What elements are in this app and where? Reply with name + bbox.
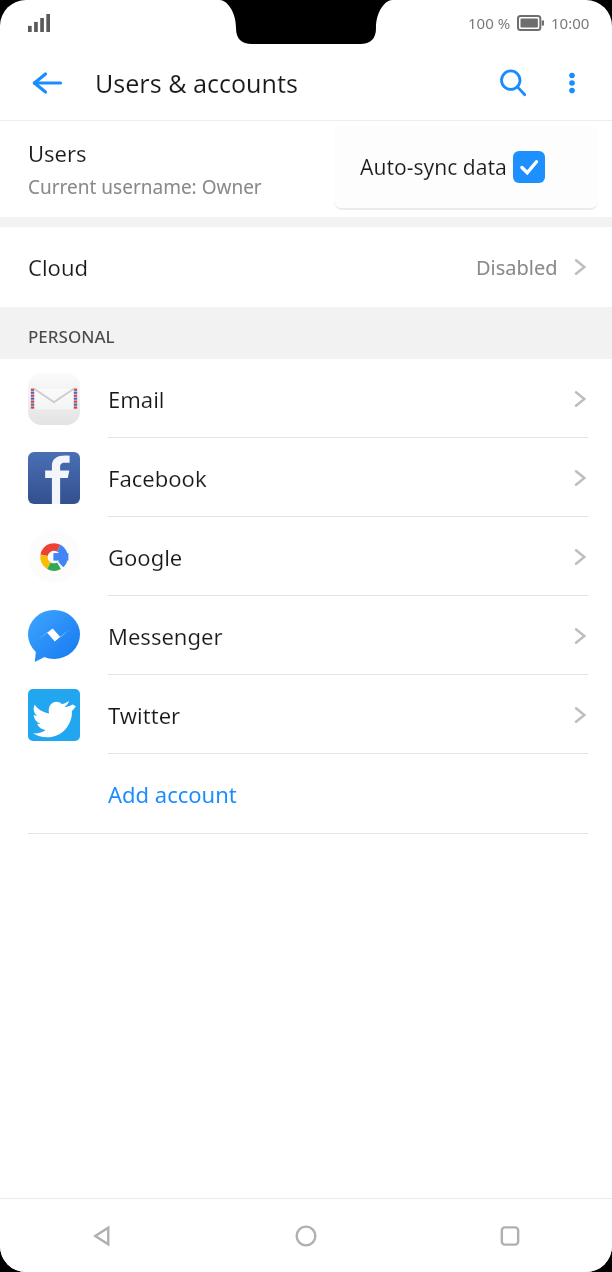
staticText: Cloud <box>28 252 89 282</box>
staticText: Add account <box>108 779 237 809</box>
button[interactable]: Email <box>0 359 612 438</box>
button[interactable]: Google <box>0 517 612 596</box>
staticText: Auto-sync data <box>360 153 507 182</box>
button[interactable]: Back <box>16 52 78 114</box>
button[interactable]: Recent apps <box>408 1199 612 1272</box>
button[interactable]: Auto-sync data <box>334 126 598 208</box>
staticText: Twitter <box>108 700 181 730</box>
button[interactable]: More options <box>544 55 600 111</box>
staticText: 100 % <box>468 13 511 33</box>
button[interactable]: Twitter <box>0 675 612 754</box>
button[interactable]: Home <box>204 1199 408 1272</box>
button[interactable]: Search <box>482 52 544 114</box>
staticText: Messenger <box>108 621 223 651</box>
button[interactable]: Cloud <box>0 227 612 307</box>
staticText: 10:00 <box>551 13 590 33</box>
button[interactable]: Users <box>0 121 612 217</box>
staticText: PERSONAL <box>28 325 115 348</box>
staticText: Current username: Owner <box>28 174 262 200</box>
button[interactable]: Messenger <box>0 596 612 675</box>
staticText: Users & accounts <box>95 66 299 100</box>
staticText: Users <box>28 138 87 168</box>
button[interactable]: Facebook <box>0 438 612 517</box>
button[interactable]: Back <box>0 1199 204 1272</box>
staticText: Google <box>108 542 183 572</box>
staticText: Facebook <box>108 463 207 493</box>
staticText: Disabled <box>476 254 558 281</box>
staticText: Email <box>108 384 165 414</box>
button[interactable]: Add account <box>0 754 612 834</box>
